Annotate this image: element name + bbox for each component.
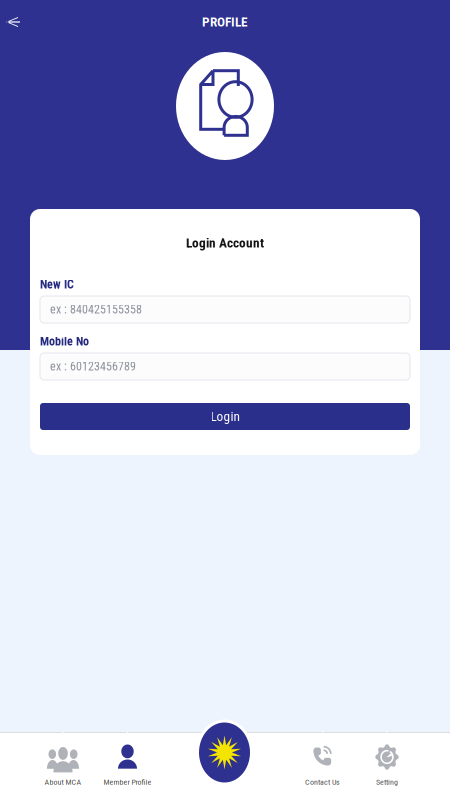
button[interactable]: About MCA bbox=[26, 732, 100, 800]
staticText: ex : 840425155358 bbox=[50, 302, 142, 317]
staticText: Login Account bbox=[186, 235, 264, 251]
button[interactable]: Login bbox=[40, 403, 410, 430]
button[interactable]: Back bbox=[0, 7, 33, 37]
staticText: ex : 60123456789 bbox=[50, 359, 136, 374]
staticText: Login bbox=[210, 409, 239, 424]
button[interactable]: Member Profile bbox=[90, 732, 164, 800]
button[interactable]: MCA Home bbox=[196, 719, 253, 785]
staticText: New IC bbox=[40, 277, 74, 292]
button[interactable]: ex : 840425155358 bbox=[40, 296, 410, 323]
staticText: PROFILE bbox=[202, 14, 248, 30]
staticText: Setting bbox=[376, 777, 398, 787]
staticText: Member Profile bbox=[103, 777, 151, 787]
button[interactable]: ex : 60123456789 bbox=[40, 353, 410, 380]
button[interactable]: Contact Us bbox=[285, 732, 359, 800]
staticText: Mobile No bbox=[40, 334, 89, 349]
button[interactable]: Setting bbox=[350, 732, 424, 800]
staticText: Contact Us bbox=[305, 777, 340, 787]
staticText: About MCA bbox=[44, 777, 81, 787]
